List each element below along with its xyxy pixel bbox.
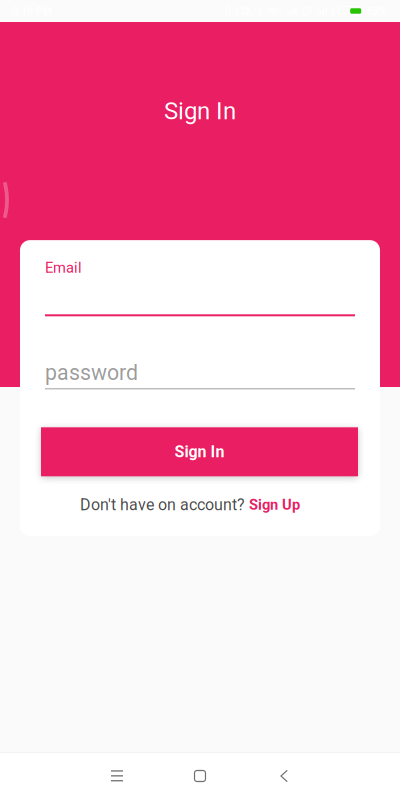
- staticText: Sign In: [174, 442, 224, 461]
- staticText: password: [45, 360, 138, 385]
- staticText: Email: [45, 259, 82, 276]
- button[interactable]: Home: [183, 759, 217, 793]
- staticText: Sign In: [164, 97, 236, 125]
- button[interactable]: Recent apps: [100, 759, 134, 793]
- button[interactable]: Sign In: [41, 427, 358, 476]
- staticText: Sign Up: [249, 496, 300, 513]
- staticText: Don't have on account?: [80, 495, 245, 514]
- button[interactable]: Email: [41, 259, 355, 316]
- button[interactable]: Back: [267, 759, 301, 793]
- button[interactable]: password: [41, 360, 355, 389]
- button[interactable]: Sign Up: [249, 496, 300, 513]
